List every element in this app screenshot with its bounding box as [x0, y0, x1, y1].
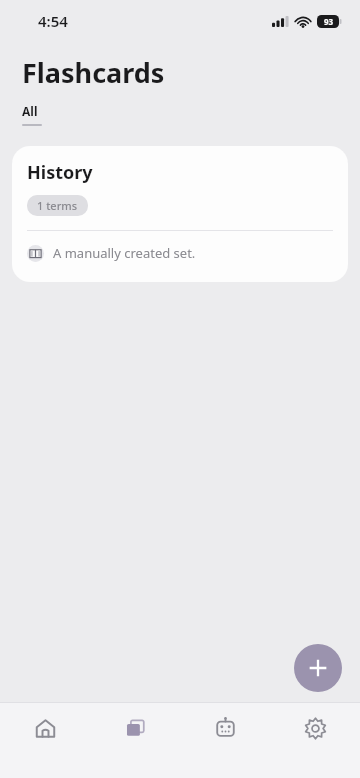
button[interactable]: Home: [0, 703, 90, 778]
staticText: All: [22, 103, 38, 119]
staticText: 4:54: [38, 11, 68, 31]
button[interactable]: Add flashcard set: [294, 644, 342, 692]
button[interactable]: All: [22, 103, 48, 128]
button[interactable]: Settings: [270, 703, 360, 778]
button[interactable]: Assistant: [180, 703, 270, 778]
staticText: A manually created set.: [53, 244, 196, 262]
button[interactable]: History: [12, 146, 348, 282]
staticText: History: [27, 160, 93, 185]
staticText: 93: [324, 16, 334, 27]
button[interactable]: Flashcards: [90, 703, 180, 778]
staticText: Flashcards: [22, 54, 165, 91]
staticText: 1 terms: [37, 198, 78, 213]
